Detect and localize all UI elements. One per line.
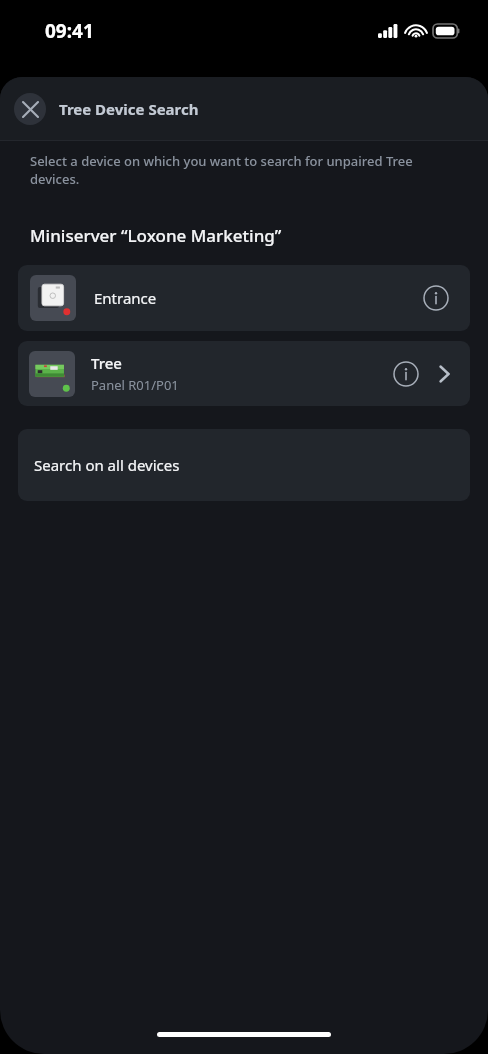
staticText: Tree Device Search: [59, 99, 199, 119]
staticText: Miniserver “Loxone Marketing”: [30, 224, 282, 247]
staticText: Panel R01/P01: [91, 376, 179, 394]
button[interactable]: Entrance: [18, 265, 470, 331]
button[interactable]: Search on all devices: [18, 429, 470, 501]
staticText: Select a device on which you want to sea…: [30, 152, 413, 188]
button[interactable]: Info: [390, 358, 422, 390]
staticText: Search on all devices: [34, 455, 180, 475]
staticText: 09:41: [45, 18, 94, 44]
button[interactable]: Open: [434, 364, 454, 384]
staticText: Entrance: [94, 288, 157, 308]
staticText: Tree: [91, 353, 122, 373]
button[interactable]: Info: [420, 282, 452, 314]
button[interactable]: Close: [14, 93, 46, 125]
button[interactable]: Tree: [18, 341, 470, 406]
